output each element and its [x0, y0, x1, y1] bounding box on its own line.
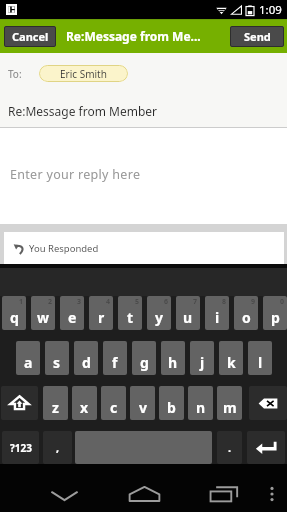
- staticText: n: [196, 398, 206, 417]
- button[interactable]: Recent apps: [196, 464, 252, 512]
- staticText: 5: [135, 297, 140, 307]
- staticText: o: [242, 308, 251, 327]
- button[interactable]: y: [147, 296, 171, 330]
- staticText: h: [168, 353, 178, 372]
- button[interactable]: h: [161, 341, 185, 375]
- staticText: 0: [280, 297, 285, 307]
- staticText: x: [80, 398, 89, 417]
- button[interactable]: Enter: [247, 431, 285, 464]
- button[interactable]: v: [130, 386, 155, 420]
- staticText: s: [53, 353, 61, 372]
- staticText: 1:09: [259, 2, 282, 18]
- staticText: Enter your reply here: [10, 166, 141, 183]
- button[interactable]: f: [103, 341, 127, 375]
- staticText: j: [200, 353, 205, 372]
- staticText: Send: [244, 29, 271, 44]
- button[interactable]: e: [60, 296, 84, 330]
- button[interactable]: g: [132, 341, 156, 375]
- staticText: a: [24, 353, 33, 372]
- staticText: u: [183, 308, 193, 327]
- staticText: b: [167, 398, 176, 417]
- staticText: q: [10, 308, 19, 327]
- staticText: 1: [19, 297, 24, 307]
- staticText: 2: [48, 297, 53, 307]
- staticText: v: [139, 398, 147, 417]
- staticText: w: [37, 308, 49, 327]
- staticText: ,: [56, 440, 60, 455]
- staticText: Cancel: [12, 29, 49, 44]
- staticText: d: [82, 353, 91, 372]
- button[interactable]: c: [101, 386, 126, 420]
- staticText: e: [68, 308, 77, 327]
- staticText: t: [127, 308, 134, 327]
- button[interactable]: t: [118, 296, 142, 330]
- staticText: m: [223, 398, 237, 417]
- staticText: ?123: [10, 441, 32, 455]
- button[interactable]: Enter your reply here: [0, 128, 287, 224]
- button[interactable]: Cancel: [4, 26, 56, 47]
- button[interactable]: o: [234, 296, 258, 330]
- button[interactable]: More options: [257, 464, 287, 512]
- button[interactable]: Home: [116, 464, 172, 512]
- button[interactable]: .: [217, 431, 242, 464]
- staticText: 6: [164, 297, 169, 307]
- staticText: z: [52, 398, 59, 417]
- staticText: l: [258, 353, 263, 372]
- button[interactable]: Re:Message from Member: [0, 94, 287, 127]
- button[interactable]: ?123: [2, 431, 39, 464]
- button[interactable]: Backspace: [249, 386, 287, 420]
- button[interactable]: s: [45, 341, 69, 375]
- button[interactable]: b: [159, 386, 184, 420]
- button[interactable]: a: [16, 341, 40, 375]
- staticText: p: [271, 308, 280, 327]
- staticText: r: [98, 308, 105, 327]
- button[interactable]: r: [89, 296, 113, 330]
- staticText: Eric Smith: [60, 67, 107, 81]
- staticText: To:: [8, 67, 22, 81]
- staticText: You Responded: [29, 242, 99, 255]
- button[interactable]: q: [2, 296, 26, 330]
- button[interactable]: To:: [0, 53, 287, 94]
- staticText: 4: [106, 297, 111, 307]
- button[interactable]: ,: [43, 431, 72, 464]
- staticText: i: [215, 308, 220, 327]
- button[interactable]: p: [263, 296, 287, 330]
- button[interactable]: n: [188, 386, 213, 420]
- staticText: Re:Message from Member: [8, 103, 158, 119]
- staticText: c: [110, 398, 118, 417]
- button[interactable]: k: [219, 341, 243, 375]
- button[interactable]: u: [176, 296, 200, 330]
- staticText: g: [140, 353, 149, 372]
- button[interactable]: Send: [230, 26, 284, 47]
- staticText: y: [155, 308, 163, 327]
- button[interactable]: Hide keyboard: [36, 464, 92, 512]
- button[interactable]: You Responded: [4, 232, 284, 264]
- button[interactable]: z: [43, 386, 68, 420]
- button[interactable]: x: [72, 386, 97, 420]
- button[interactable]: d: [74, 341, 98, 375]
- button[interactable]: m: [217, 386, 242, 420]
- staticText: .: [228, 440, 232, 455]
- button[interactable]: Eric Smith: [39, 65, 128, 82]
- button[interactable]: j: [190, 341, 214, 375]
- button[interactable]: w: [31, 296, 55, 330]
- staticText: 9: [251, 297, 256, 307]
- staticText: 3: [77, 297, 82, 307]
- staticText: f: [112, 353, 118, 372]
- staticText: 7: [193, 297, 198, 307]
- staticText: 8: [222, 297, 227, 307]
- button[interactable]: i: [205, 296, 229, 330]
- button[interactable]: Shift: [1, 386, 38, 420]
- staticText: k: [227, 353, 236, 372]
- staticText: Re:Message from Me...: [66, 28, 226, 44]
- button[interactable]: l: [248, 341, 272, 375]
